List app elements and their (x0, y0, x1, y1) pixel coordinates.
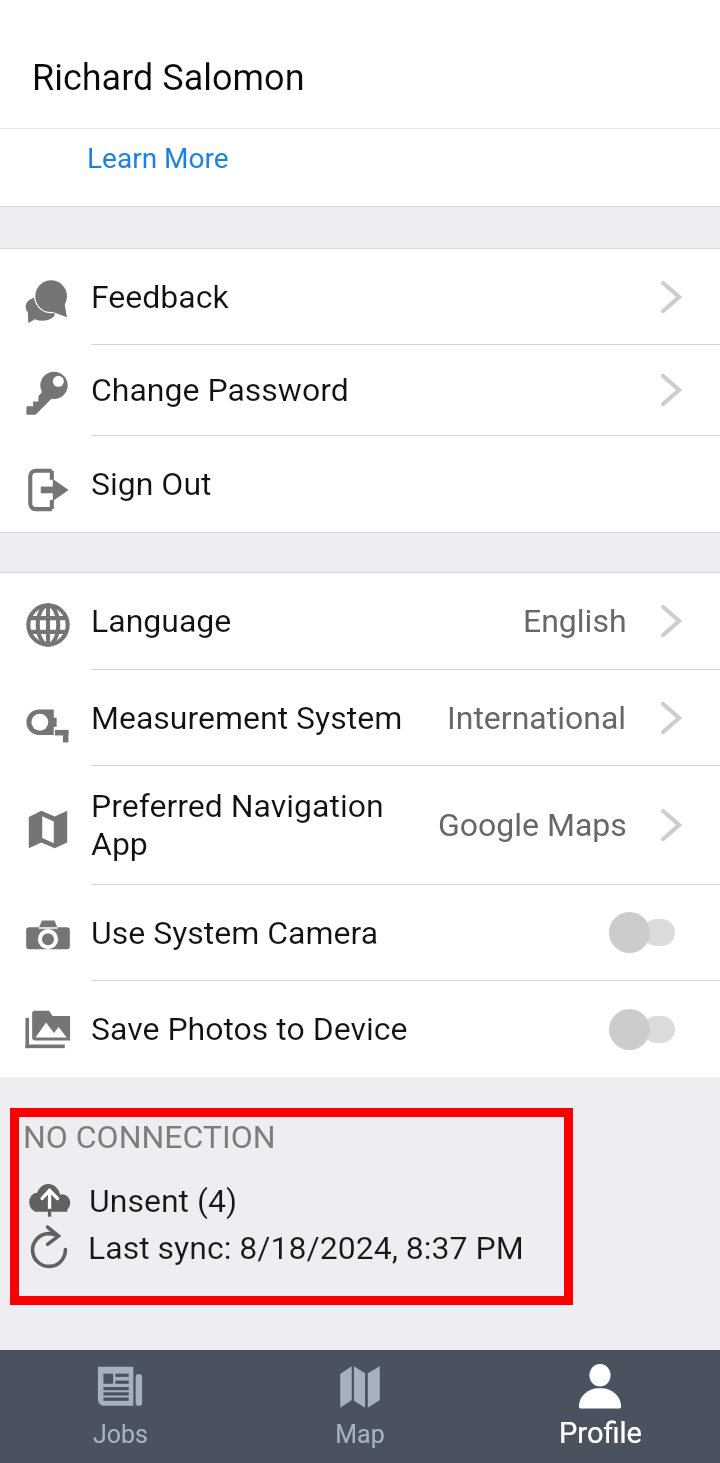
button[interactable]: Use System Camera (0, 885, 720, 980)
staticText: Google Maps (438, 806, 627, 844)
staticText: Change Password (91, 371, 349, 409)
staticText: Richard Salomon (32, 57, 305, 99)
button[interactable]: Sign Out (0, 436, 720, 532)
button[interactable]: Language (0, 573, 720, 669)
staticText: Profile (559, 1416, 642, 1450)
staticText: Language (91, 602, 232, 640)
other: Jobs (97, 1364, 143, 1410)
button[interactable]: Measurement System (0, 670, 720, 765)
button[interactable]: Map (240, 1350, 480, 1463)
staticText: Measurement System (91, 699, 403, 737)
staticText: Map (335, 1420, 385, 1449)
button[interactable]: Jobs (0, 1350, 240, 1463)
staticText: Last sync: 8/18/2024, 8:37 PM (88, 1229, 524, 1267)
staticText: Unsent (4) (89, 1182, 238, 1220)
staticText: NO CONNECTION (23, 1118, 276, 1156)
other: Map (337, 1364, 383, 1410)
button[interactable]: Save Photos to Device (0, 981, 720, 1077)
staticText: English (523, 602, 627, 640)
staticText: Sign Out (91, 465, 212, 503)
button[interactable]: Feedback (0, 249, 720, 344)
staticText: Save Photos to Device (91, 1010, 408, 1048)
staticText: Use System Camera (91, 914, 379, 952)
button[interactable]: Change Password (0, 345, 720, 435)
button[interactable]: Toggle (609, 1009, 675, 1050)
staticText: Jobs (93, 1420, 148, 1449)
staticText: International (447, 699, 627, 737)
button[interactable]: Toggle (609, 912, 675, 953)
staticText: Feedback (91, 278, 229, 316)
button[interactable]: Preferred Navigation App (0, 766, 720, 884)
button[interactable]: Profile (480, 1350, 720, 1463)
button[interactable]: Learn More (87, 142, 229, 175)
other: Profile (577, 1363, 623, 1409)
staticText: Preferred Navigation App (91, 787, 384, 863)
